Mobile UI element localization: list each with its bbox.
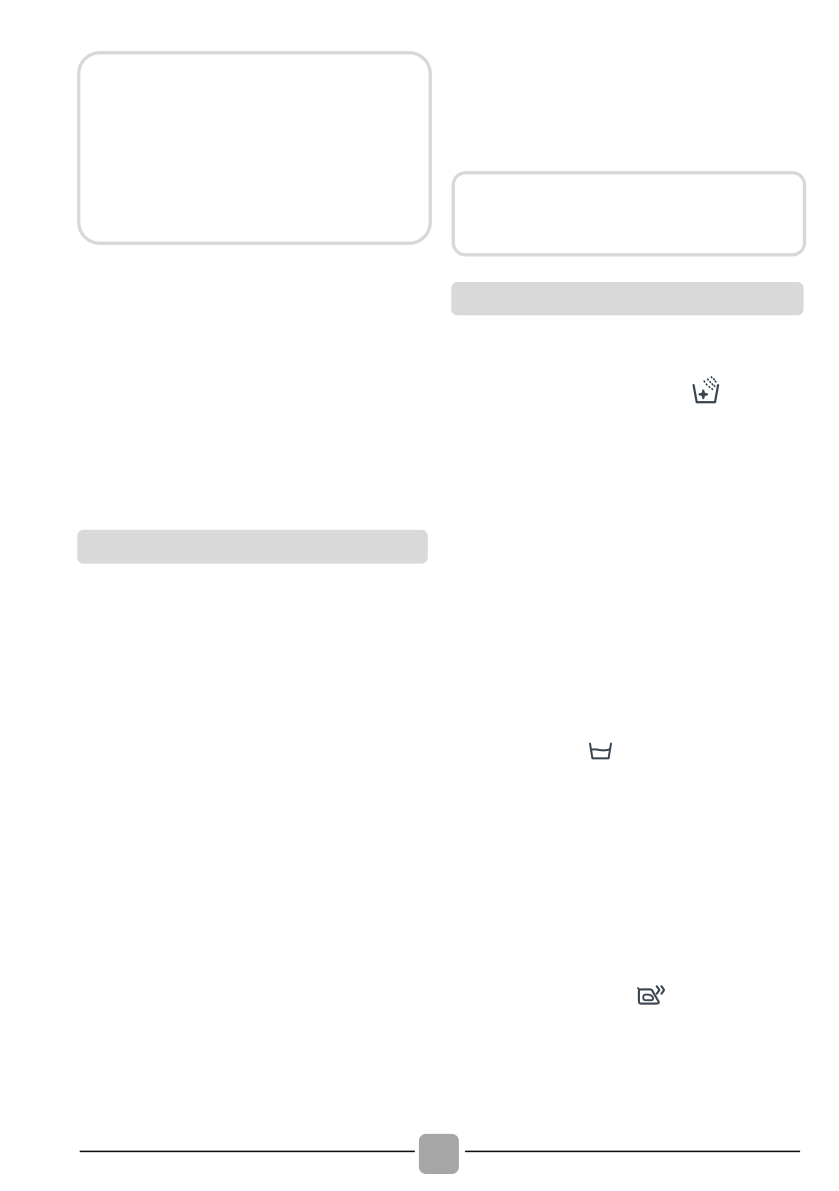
button[interactable] — [453, 173, 804, 255]
button[interactable]: Machine wash — [588, 741, 612, 761]
button[interactable]: Iron with steam — [636, 985, 666, 1007]
button[interactable] — [79, 53, 430, 243]
button[interactable]: Section heading — [77, 530, 428, 564]
button[interactable]: Wash with added treatment — [691, 373, 721, 403]
